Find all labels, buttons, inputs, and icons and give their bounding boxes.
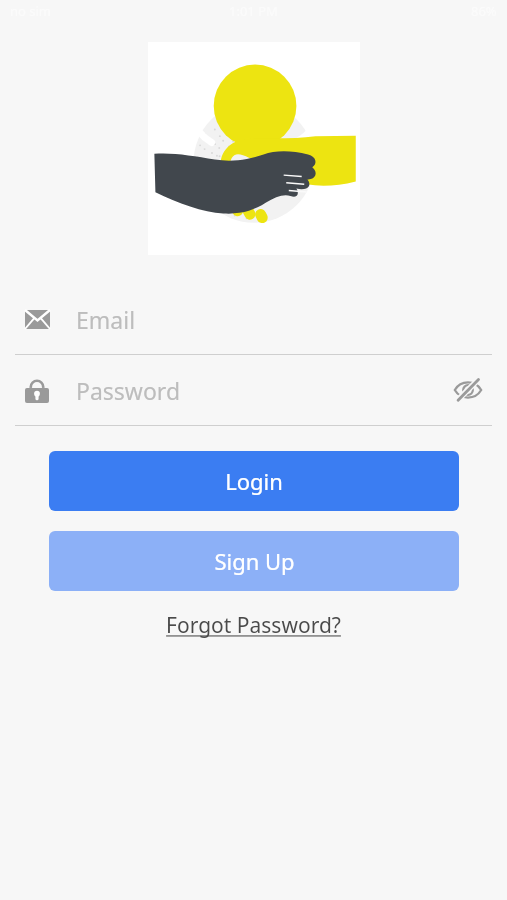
button[interactable]: Forgot Password? [160,607,347,644]
button[interactable]: Email [0,284,507,354]
button[interactable]: Login [49,451,459,511]
staticText: Password [76,375,181,406]
button[interactable]: Show password [451,373,485,407]
button[interactable]: Sign Up [49,531,459,591]
staticText: Email [76,304,136,335]
staticText: Login [225,466,283,496]
staticText: Forgot Password? [166,611,341,640]
staticText: Sign Up [214,546,295,576]
button[interactable]: Password [0,355,507,425]
